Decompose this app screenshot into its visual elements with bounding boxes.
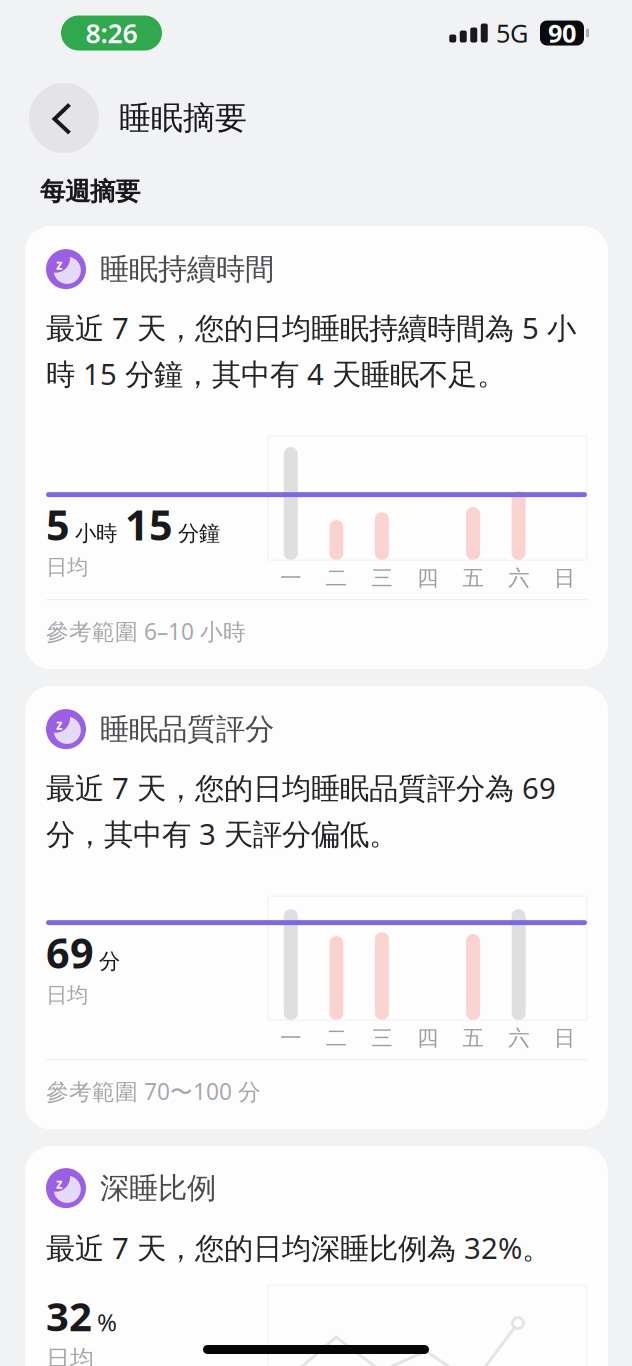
staticText: 8:26 <box>85 15 137 51</box>
staticText: 最近 7 天，您的日均深睡比例為 32%。 <box>46 1228 551 1267</box>
staticText: 日 <box>554 565 575 591</box>
staticText: 二 <box>326 565 347 591</box>
staticText: 六 <box>508 565 529 591</box>
staticText: z <box>56 256 63 273</box>
staticText: 三 <box>371 1025 392 1051</box>
staticText: 日 <box>554 1025 575 1051</box>
staticText: 分 <box>99 948 120 975</box>
staticText: % <box>97 1306 117 1338</box>
staticText: 四 <box>417 565 438 591</box>
staticText: 六 <box>508 1025 529 1051</box>
staticText: 69 <box>46 925 94 980</box>
staticText: 日均 <box>46 982 88 1008</box>
staticText: 參考範圍 70〜100 分 <box>46 1076 261 1106</box>
staticText: 一 <box>280 1025 301 1051</box>
staticText: 睡眠持續時間 <box>100 251 274 287</box>
staticText: 15 <box>125 497 173 552</box>
staticText: 一 <box>280 565 301 591</box>
staticText: 三 <box>371 565 392 591</box>
staticText: 5 <box>46 497 70 552</box>
button[interactable]: 返回 <box>29 83 99 153</box>
staticText: 二 <box>326 1025 347 1051</box>
staticText: 分，其中有 3 天評分偏低。 <box>46 814 398 853</box>
staticText: 日均 <box>46 554 88 580</box>
staticText: 最近 7 天，您的日均睡眠持續時間為 5 小 <box>46 308 576 347</box>
staticText: 睡眠摘要 <box>119 98 247 138</box>
staticText: 日均 <box>46 1344 94 1366</box>
staticText: 深睡比例 <box>100 1170 216 1206</box>
staticText: 參考範圍 6–10 小時 <box>46 616 246 646</box>
staticText: 小時 <box>75 520 117 547</box>
staticText: 90 <box>548 16 576 50</box>
staticText: z <box>56 716 63 733</box>
staticText: 最近 7 天，您的日均睡眠品質評分為 69 <box>46 768 556 807</box>
staticText: 睡眠品質評分 <box>100 711 274 747</box>
staticText: 32 <box>46 1289 92 1342</box>
staticText: 分鐘 <box>178 520 220 547</box>
staticText: 每週摘要 <box>40 176 140 207</box>
staticText: 五 <box>463 565 484 591</box>
staticText: 五 <box>463 1025 484 1051</box>
staticText: 時 15 分鐘，其中有 4 天睡眠不足。 <box>46 354 506 393</box>
staticText: z <box>56 1175 63 1192</box>
staticText: 四 <box>417 1025 438 1051</box>
staticText: 5G <box>496 16 528 50</box>
